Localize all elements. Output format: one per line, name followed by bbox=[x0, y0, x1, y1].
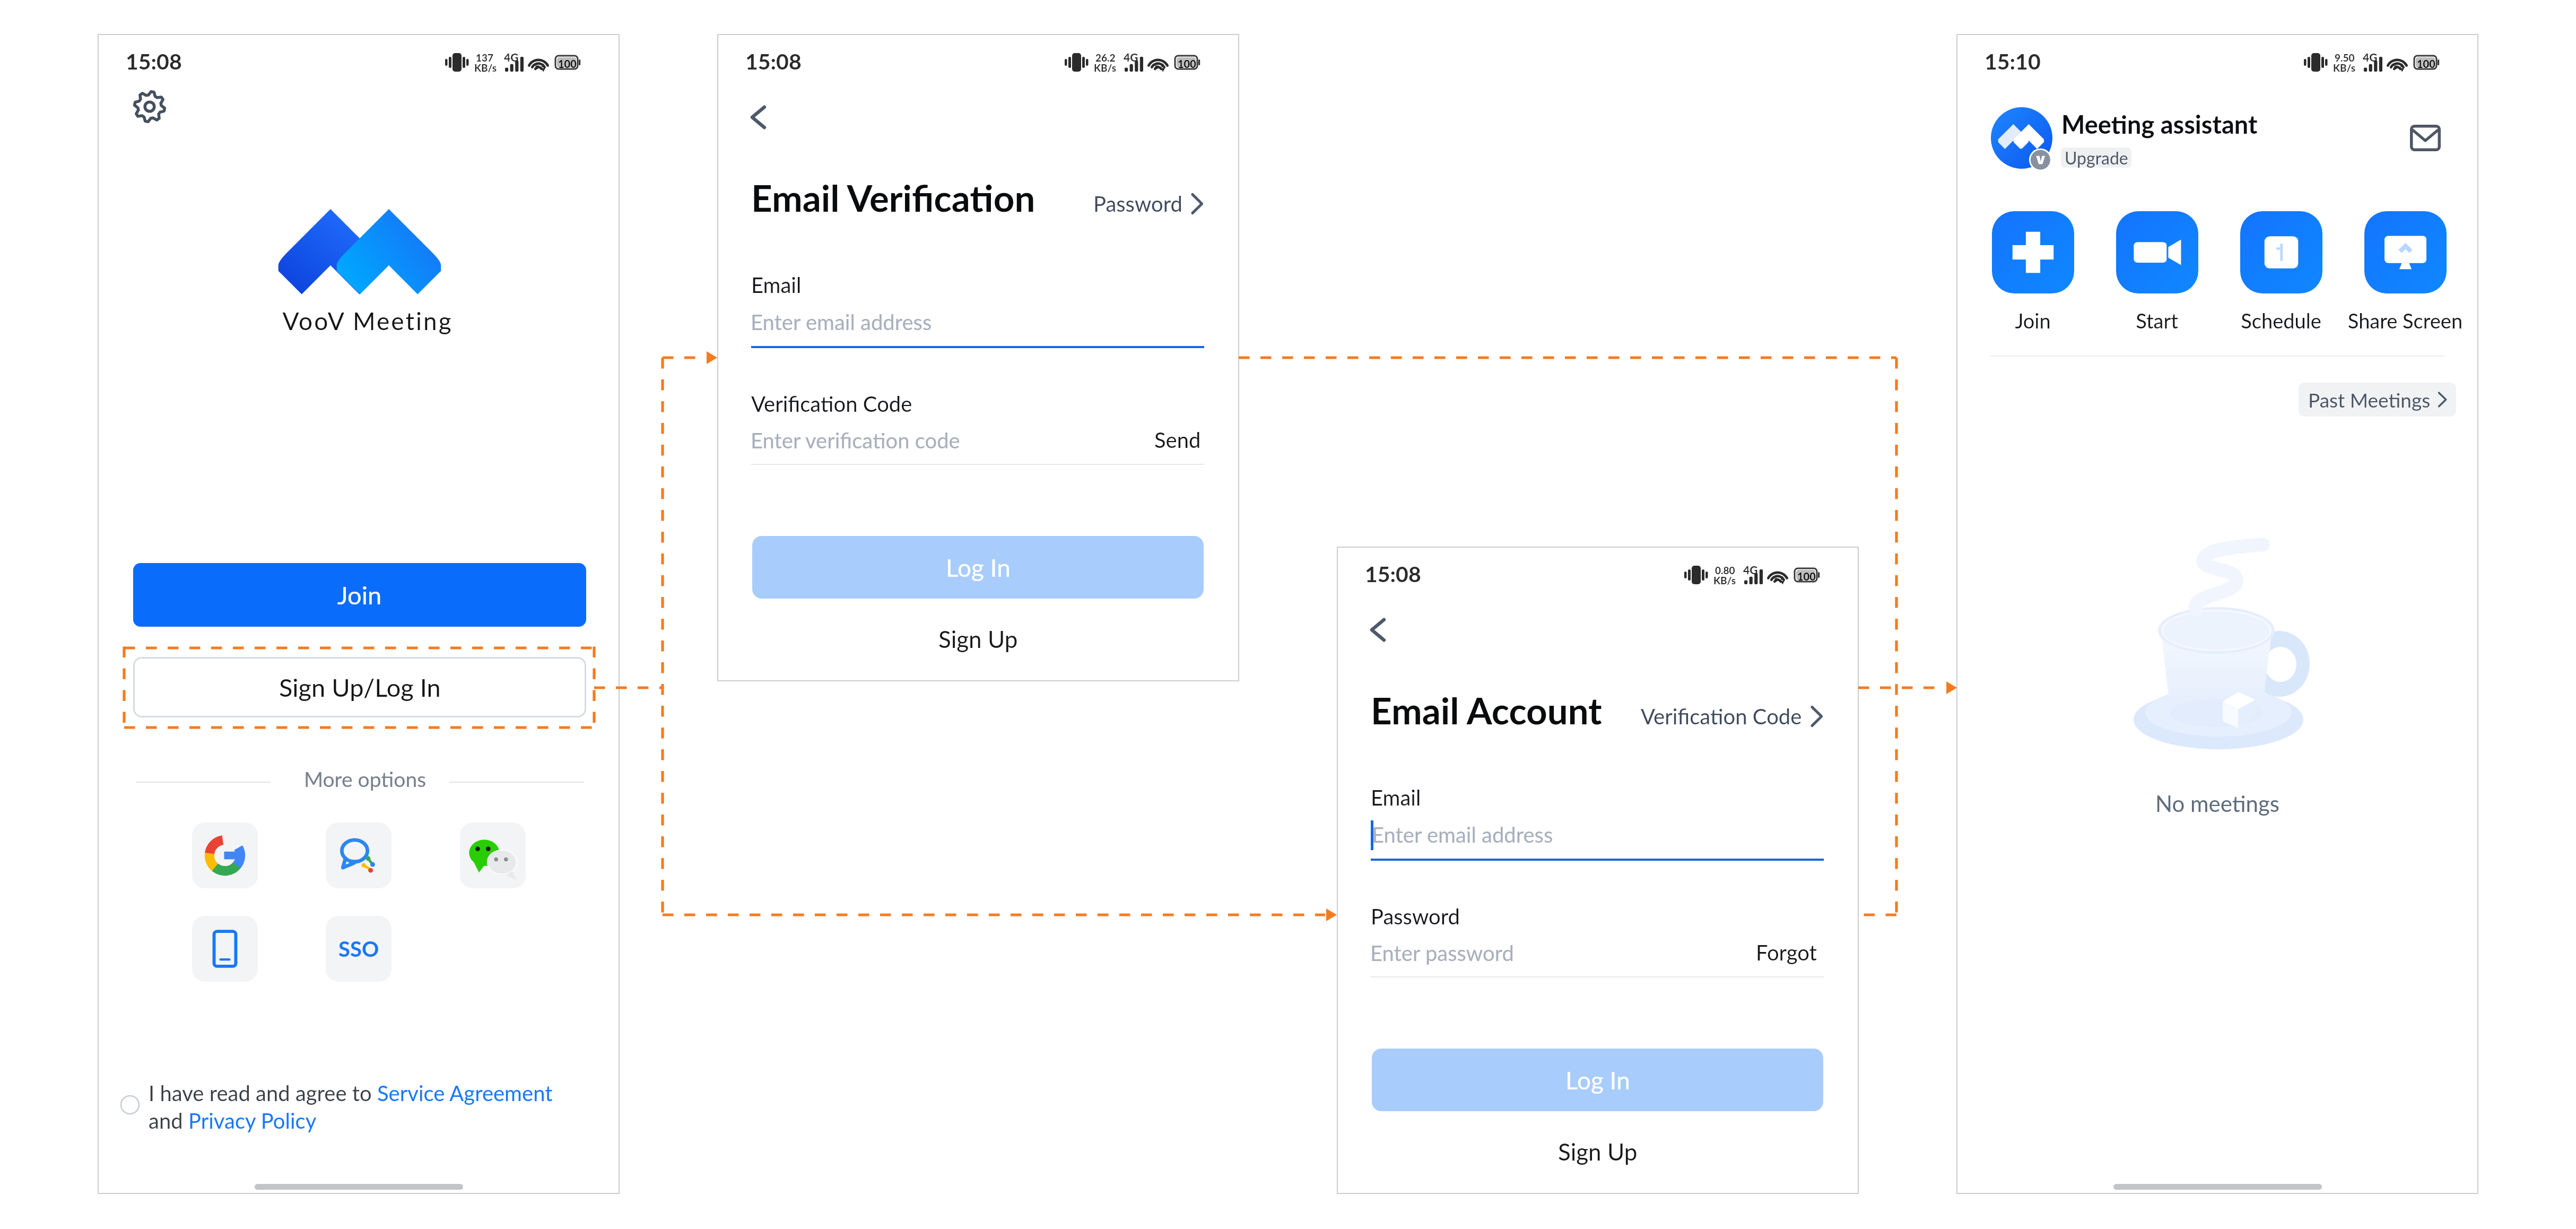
staticText: 26.2 bbox=[1095, 51, 1116, 64]
button[interactable]: Sign in with QQ bbox=[326, 823, 391, 888]
button[interactable]: Settings bbox=[132, 89, 168, 125]
staticText: KB/s bbox=[2333, 62, 2355, 74]
staticText: 100 bbox=[1178, 57, 1196, 70]
staticText: More options bbox=[104, 767, 626, 792]
staticText: SSO bbox=[338, 936, 379, 962]
staticText: No meetings bbox=[1956, 790, 2478, 817]
button[interactable]: SSO bbox=[326, 916, 391, 982]
staticText: 100 bbox=[2417, 57, 2435, 70]
staticText: 100 bbox=[558, 57, 577, 70]
button[interactable]: Forgot bbox=[1750, 936, 1823, 970]
staticText: Enter verification code bbox=[751, 428, 960, 453]
staticText: Schedule bbox=[2219, 308, 2343, 333]
staticText: Email bbox=[751, 272, 802, 298]
staticText: Enter email address bbox=[1372, 822, 1553, 847]
staticText: 0.80 bbox=[1715, 564, 1735, 576]
staticText: Upgrade bbox=[2065, 148, 2128, 168]
button[interactable]: Send bbox=[1148, 423, 1207, 457]
button[interactable]: Schedule bbox=[2219, 211, 2343, 333]
button[interactable]: Back bbox=[1362, 610, 1396, 650]
button[interactable]: Sign Up/Log In bbox=[133, 657, 586, 717]
staticText: I have read and agree to bbox=[149, 1080, 377, 1106]
staticText: Join bbox=[1971, 308, 2095, 333]
staticText: Log In bbox=[1565, 1066, 1630, 1095]
button[interactable]: Sign Up bbox=[926, 621, 1031, 657]
button[interactable]: Sign in with WeChat bbox=[460, 823, 526, 888]
staticText: Past Meetings bbox=[2308, 388, 2431, 411]
staticText: Password bbox=[1371, 904, 1460, 929]
staticText: Forgot bbox=[1756, 940, 1817, 965]
button[interactable]: Back bbox=[743, 98, 777, 137]
button[interactable]: Join bbox=[133, 563, 586, 627]
staticText: 15:08 bbox=[126, 48, 182, 74]
staticText: Send bbox=[1154, 427, 1201, 453]
staticText: 137 bbox=[476, 51, 494, 64]
staticText: Start bbox=[2095, 308, 2219, 333]
button[interactable]: Start bbox=[2095, 211, 2219, 333]
staticText: Sign Up bbox=[938, 625, 1018, 653]
button[interactable]: Messages bbox=[2410, 125, 2441, 151]
staticText: Email Verification bbox=[751, 176, 1035, 220]
button[interactable]: Past Meetings bbox=[2299, 383, 2456, 417]
staticText: Password bbox=[1093, 191, 1182, 217]
staticText: Sign Up bbox=[1558, 1138, 1638, 1166]
staticText: KB/s bbox=[1094, 62, 1116, 74]
staticText: KB/s bbox=[1713, 574, 1736, 586]
staticText: VooV Meeting bbox=[107, 306, 629, 335]
button[interactable]: Verification Code bbox=[1581, 704, 1824, 729]
button[interactable]: Share Screen bbox=[2343, 211, 2467, 333]
staticText: Email bbox=[1371, 785, 1421, 810]
staticText: 4G bbox=[1124, 50, 1138, 64]
staticText: Enter email address bbox=[751, 309, 932, 335]
button[interactable]: Privacy Policy bbox=[188, 1108, 317, 1133]
staticText: KB/s bbox=[474, 62, 497, 74]
button[interactable]: Password bbox=[961, 191, 1204, 217]
staticText: Join bbox=[337, 580, 382, 610]
staticText: 4G bbox=[504, 50, 519, 64]
staticText: Verification Code bbox=[751, 391, 912, 417]
button[interactable]: Join bbox=[1971, 211, 2095, 333]
staticText: Email Account bbox=[1371, 688, 1602, 732]
staticText: Share Screen bbox=[2343, 308, 2467, 333]
staticText: 9.50 bbox=[2335, 51, 2355, 64]
button[interactable]: Service Agreement bbox=[377, 1080, 553, 1106]
button[interactable]: Log In bbox=[752, 536, 1204, 599]
button[interactable]: Log In bbox=[1372, 1049, 1823, 1111]
staticText: 100 bbox=[1797, 570, 1816, 583]
staticText: and bbox=[149, 1108, 188, 1133]
button[interactable]: Sign in with phone bbox=[192, 916, 258, 982]
button[interactable]: Sign in with Google bbox=[192, 823, 258, 888]
staticText: Enter password bbox=[1370, 940, 1514, 966]
staticText: Verification Code bbox=[1641, 704, 1802, 729]
staticText: 15:08 bbox=[1365, 561, 1421, 587]
staticText: 15:08 bbox=[745, 48, 802, 74]
staticText: Meeting assistant bbox=[2061, 109, 2258, 139]
staticText: 4G bbox=[2363, 50, 2378, 64]
staticText: 4G bbox=[1743, 563, 1758, 576]
button[interactable]: Upgrade bbox=[2061, 148, 2131, 168]
button[interactable]: Sign Up bbox=[1545, 1133, 1650, 1170]
staticText: Log In bbox=[946, 553, 1011, 582]
staticText: 15:10 bbox=[1985, 48, 2041, 74]
staticText: Sign Up/Log In bbox=[279, 672, 441, 702]
